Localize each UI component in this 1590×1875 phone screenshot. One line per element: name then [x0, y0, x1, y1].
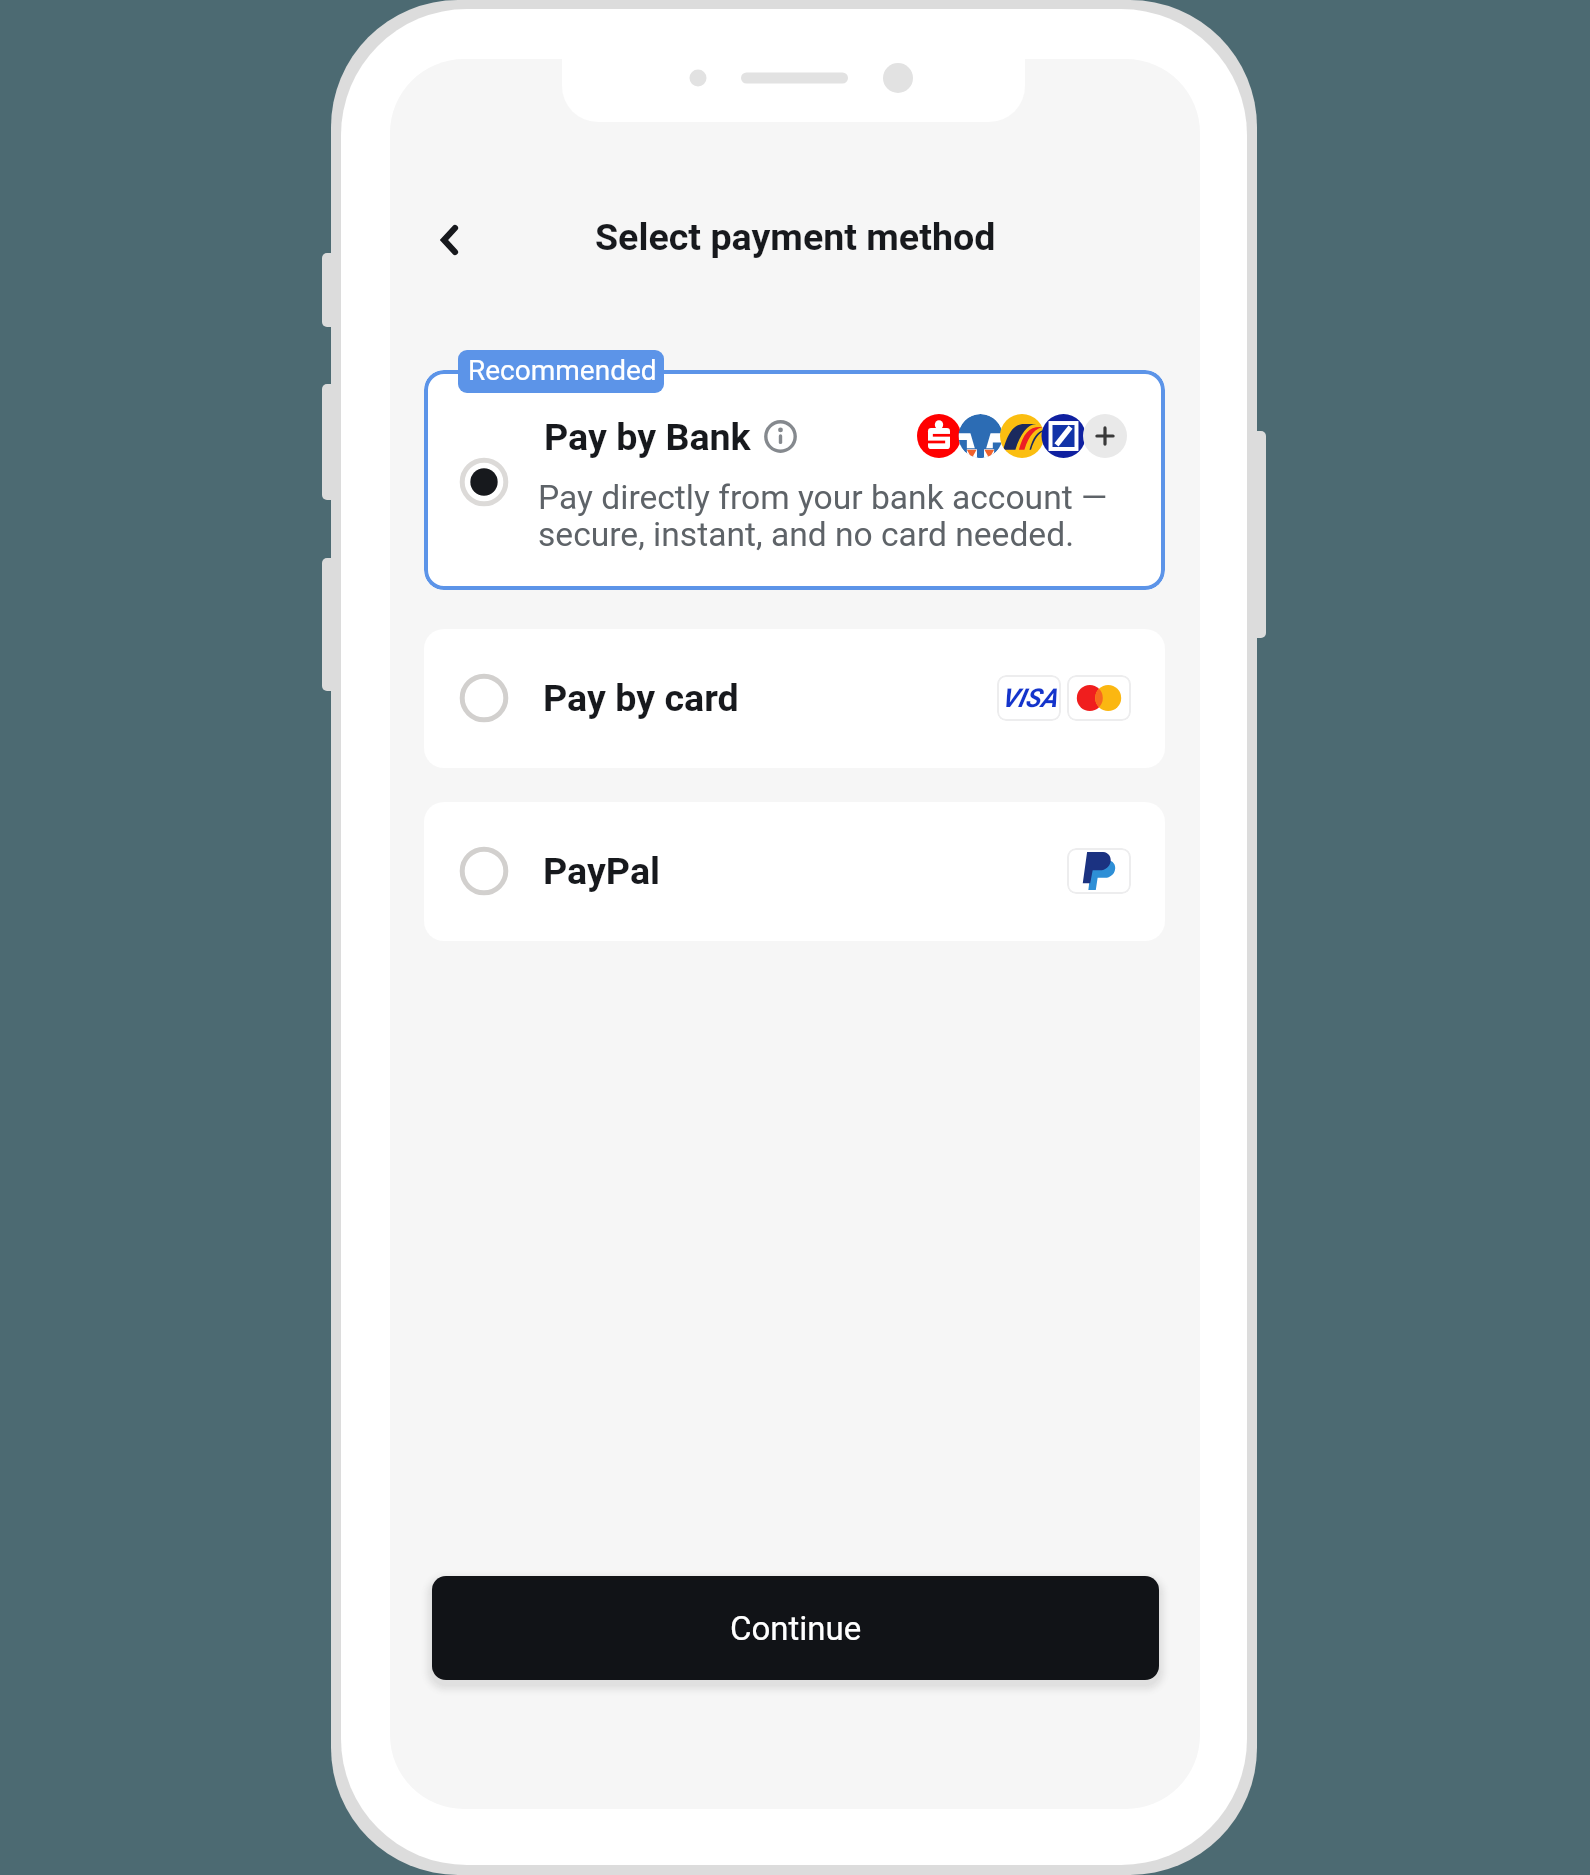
- button[interactable]: PayPal: [424, 802, 1165, 941]
- button[interactable]: Back: [413, 204, 485, 276]
- button[interactable]: Pay by Bank: [424, 370, 1165, 590]
- staticText: Continue: [730, 1609, 862, 1648]
- staticText: Pay directly from your bank account — se…: [538, 478, 1108, 554]
- staticText: Pay by card: [543, 676, 739, 720]
- button[interactable]: Pay by card: [424, 629, 1165, 768]
- button[interactable]: More information about Pay by Bank: [764, 420, 797, 453]
- staticText: Recommended: [468, 354, 657, 387]
- staticText: PayPal: [543, 849, 661, 893]
- staticText: VISA: [1001, 683, 1058, 713]
- button[interactable]: Continue: [432, 1576, 1159, 1680]
- staticText: Pay by Bank: [544, 415, 751, 459]
- staticText: Select payment method: [595, 215, 996, 259]
